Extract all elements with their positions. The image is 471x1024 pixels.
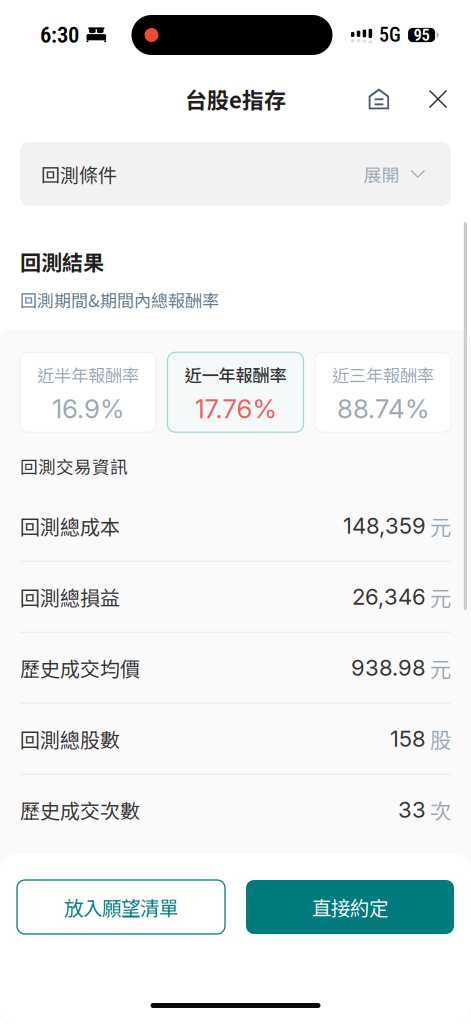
staticText: 直接約定 <box>312 893 388 921</box>
button[interactable]: Close <box>417 78 459 120</box>
staticText: 元 <box>430 652 451 683</box>
staticText: 938.98 <box>351 654 426 681</box>
staticText: 回測期間&期間內總報酬率 <box>20 287 219 312</box>
staticText: 放入願望清單 <box>64 893 178 921</box>
staticText: 展開 <box>364 161 400 187</box>
staticText: 6:30 <box>40 22 79 48</box>
button[interactable]: 近三年報酬率 <box>315 352 451 432</box>
button[interactable]: 近半年報酬率 <box>20 352 156 432</box>
staticText: 回測總股數 <box>20 724 120 753</box>
staticText: 5G <box>379 23 401 47</box>
staticText: 16.9% <box>52 393 124 424</box>
staticText: 台股e指存 <box>185 83 286 115</box>
staticText: 88.74% <box>337 393 429 424</box>
staticText: 回測總成本 <box>20 511 120 540</box>
button[interactable]: 回測條件 <box>20 142 451 206</box>
staticText: 95 <box>414 25 430 45</box>
staticText: 股 <box>430 723 451 754</box>
staticText: 回測總損益 <box>20 582 120 611</box>
staticText: 元 <box>430 581 451 612</box>
staticText: 歷史成交均價 <box>20 653 140 682</box>
staticText: 回測條件 <box>41 160 117 188</box>
button[interactable]: 近一年報酬率 <box>167 352 303 432</box>
staticText: 近三年報酬率 <box>332 362 434 387</box>
staticText: 33 <box>398 796 426 823</box>
staticText: 148,359 <box>343 512 426 539</box>
staticText: 近一年報酬率 <box>184 362 286 387</box>
button[interactable]: 直接約定 <box>246 880 454 934</box>
button[interactable]: Home <box>358 78 400 120</box>
staticText: 17.76% <box>194 393 276 424</box>
staticText: 近半年報酬率 <box>37 362 139 387</box>
button[interactable]: 放入願望清單 <box>17 880 225 934</box>
staticText: 26,346 <box>352 583 426 610</box>
staticText: 回測交易資訊 <box>20 453 128 479</box>
staticText: 158 <box>390 725 426 752</box>
staticText: 元 <box>430 510 451 541</box>
staticText: 回測結果 <box>20 246 104 276</box>
staticText: 次 <box>430 794 451 825</box>
staticText: 歷史成交次數 <box>20 795 140 824</box>
